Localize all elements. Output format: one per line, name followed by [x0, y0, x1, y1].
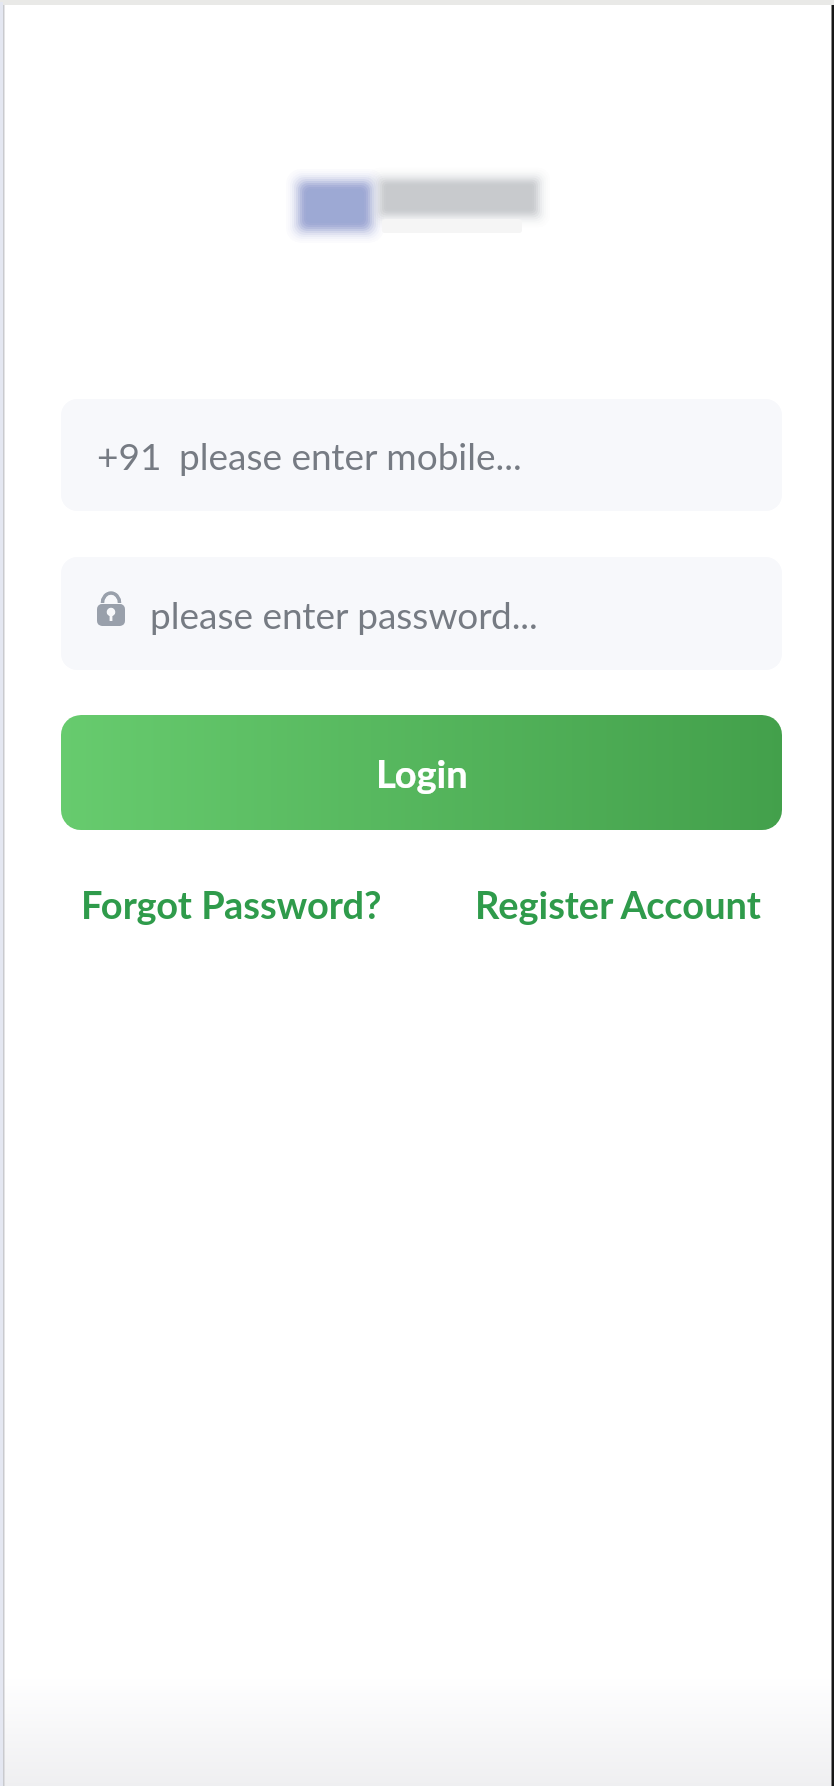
staticText: please enter mobile... — [179, 433, 522, 477]
staticText: Forgot Password? — [81, 881, 382, 927]
button[interactable]: Register Account — [475, 881, 761, 927]
staticText: Login — [376, 750, 468, 796]
button[interactable]: Login — [61, 715, 782, 830]
staticText: Register Account — [475, 881, 761, 927]
button[interactable]: Forgot Password? — [81, 881, 382, 927]
button[interactable]: +91 — [61, 399, 782, 511]
staticText: please enter password... — [150, 592, 538, 636]
staticText: +91 — [97, 433, 162, 477]
button[interactable]: please enter password... — [61, 557, 782, 670]
